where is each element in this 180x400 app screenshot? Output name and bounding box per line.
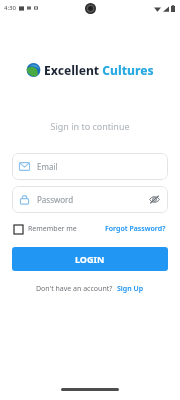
other: Remember me checkbox: [14, 225, 23, 234]
button[interactable]: Show password: [148, 193, 161, 206]
staticText: 4:30: [4, 4, 16, 12]
staticText: Don't have an account?: [36, 284, 113, 294]
other: Password: [19, 194, 30, 205]
staticText: Password: [37, 194, 74, 205]
button[interactable]: Email: [12, 153, 168, 180]
staticText: Sign in to continue: [50, 120, 130, 132]
staticText: Sign Up: [117, 284, 144, 294]
staticText: LOGIN: [75, 253, 105, 265]
button[interactable]: Remember me checkbox: [14, 224, 77, 234]
button[interactable]: Sign Up: [117, 284, 144, 294]
staticText: Excellent Cultures: [44, 62, 154, 78]
button[interactable]: Forgot Password?: [105, 224, 166, 234]
staticText: Email: [37, 161, 58, 172]
button[interactable]: LOGIN: [12, 247, 168, 271]
button[interactable]: Password: [12, 186, 168, 213]
staticText: Remember me: [28, 224, 77, 234]
staticText: Forgot Password?: [105, 224, 166, 234]
other: Email: [19, 161, 30, 172]
